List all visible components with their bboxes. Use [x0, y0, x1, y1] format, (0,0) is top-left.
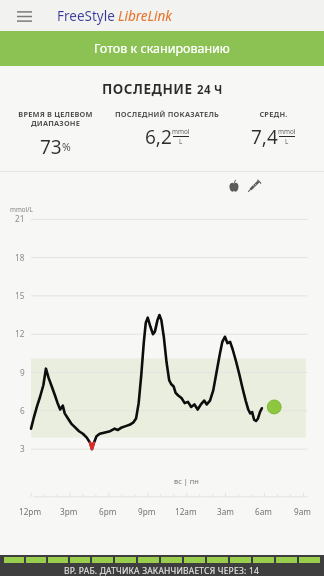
staticText: 18 — [15, 252, 25, 263]
staticText: 6am — [255, 506, 272, 517]
staticText: 6 — [20, 405, 25, 416]
button[interactable]: ВРЕМЯ В ЦЕЛЕВОМ ДИАПАЗОНЕ — [3, 109, 108, 160]
staticText: вс | пн — [174, 476, 199, 486]
staticText: 3pm — [60, 506, 78, 517]
staticText: 3am — [217, 506, 234, 517]
staticText: % — [62, 140, 71, 154]
staticText: 9 — [20, 367, 25, 378]
button[interactable]: ПОСЛЕДНИЙ ПОКАЗАТЕЛЬ — [108, 109, 226, 150]
button[interactable]: Insulin note — [246, 177, 263, 194]
button[interactable]: Food note — [225, 177, 242, 194]
staticText: 12 — [15, 328, 25, 339]
staticText: mmol — [172, 127, 190, 136]
staticText: L — [285, 137, 289, 146]
staticText: mmol/L — [10, 205, 33, 214]
staticText: 3 — [20, 443, 25, 454]
button[interactable]: Готов к сканированию — [0, 31, 324, 66]
staticText: 12am — [175, 506, 197, 517]
staticText: ПОСЛЕДНИЙ ПОКАЗАТЕЛЬ — [115, 109, 219, 119]
staticText: ПОСЛЕДНИЕ — [102, 80, 197, 98]
staticText: 7,4 — [251, 124, 278, 150]
staticText: 6pm — [99, 506, 117, 517]
staticText: Готов к сканированию — [94, 40, 230, 57]
staticText: 15 — [15, 290, 25, 301]
staticText: СРЕДН. — [259, 109, 288, 119]
staticText: FreeStyle — [57, 7, 115, 25]
staticText: 12pm — [19, 506, 42, 517]
button[interactable]: СРЕДН. — [226, 109, 321, 150]
staticText: LibreLink — [118, 7, 173, 25]
staticText: mmol — [278, 127, 296, 136]
staticText: 6,2 — [145, 124, 172, 150]
staticText: 21 — [15, 213, 25, 224]
staticText: 73 — [40, 134, 62, 160]
staticText: 9am — [294, 506, 311, 517]
staticText: ВРЕМЯ В ЦЕЛЕВОМ ДИАПАЗОНЕ — [18, 109, 93, 129]
staticText: L — [179, 137, 183, 146]
staticText: 9pm — [138, 506, 156, 517]
staticText: ВР. РАБ. ДАТЧИКА ЗАКАНЧИВАЕТСЯ ЧЕРЕЗ: 14 — [64, 565, 260, 576]
staticText: 24 Ч — [197, 82, 223, 98]
button[interactable]: Open navigation menu — [10, 2, 38, 30]
